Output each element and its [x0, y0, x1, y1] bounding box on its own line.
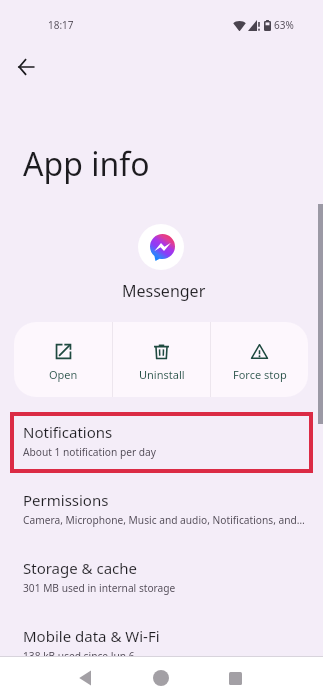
staticText: Uninstall: [139, 367, 185, 382]
staticText: 18:17: [48, 18, 74, 32]
button[interactable]: Notifications: [0, 406, 323, 474]
staticText: Mobile data & Wi-Fi: [23, 626, 160, 646]
staticText: 63%: [274, 18, 294, 32]
staticText: Notifications: [23, 422, 113, 442]
staticText: Messenger: [122, 280, 206, 302]
staticText: Storage & cache: [23, 558, 138, 578]
staticText: Camera, Microphone, Music and audio, Not…: [23, 513, 305, 527]
staticText: Open: [49, 367, 78, 382]
staticText: 301 MB used in internal storage: [23, 581, 176, 595]
button[interactable]: Mobile data & Wi-Fi: [0, 610, 323, 678]
button[interactable]: Home: [139, 656, 183, 700]
button[interactable]: Open: [14, 322, 112, 397]
staticText: 138 kB used since Jun 6: [23, 649, 135, 663]
staticText: Force stop: [233, 367, 287, 382]
button[interactable]: Uninstall: [113, 322, 210, 397]
button[interactable]: Force stop: [211, 322, 308, 397]
button[interactable]: Back: [63, 656, 107, 700]
staticText: App info: [23, 142, 150, 186]
button[interactable]: Permissions: [0, 474, 323, 542]
button[interactable]: Storage & cache: [0, 542, 323, 610]
button[interactable]: Recent apps: [213, 656, 257, 700]
staticText: About 1 notification per day: [23, 445, 156, 459]
staticText: Permissions: [23, 490, 109, 510]
button[interactable]: Back: [2, 43, 50, 91]
